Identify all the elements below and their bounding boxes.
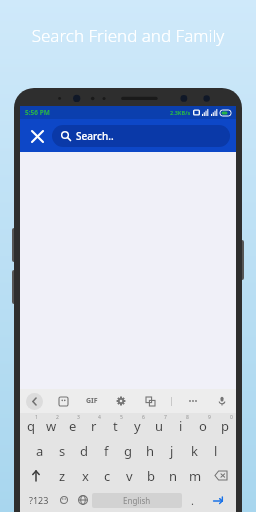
staticText: p (221, 417, 229, 435)
staticText: 2 (56, 414, 59, 421)
button[interactable]: Stickers (55, 393, 71, 409)
button[interactable]: c (96, 463, 118, 488)
staticText: u (155, 417, 164, 435)
staticText: z (59, 467, 66, 485)
button[interactable]: Translate (142, 393, 158, 409)
staticText: o (199, 417, 207, 435)
button[interactable]: a (29, 438, 51, 463)
staticText: a (36, 442, 44, 460)
button[interactable]: d (73, 438, 95, 463)
button[interactable]: q (20, 413, 41, 438)
staticText: r (91, 417, 97, 435)
button[interactable]: s (51, 438, 73, 463)
staticText: 9 (208, 414, 211, 421)
staticText: h (146, 442, 155, 460)
button[interactable]: . (182, 488, 203, 512)
button[interactable]: m (184, 463, 206, 488)
button[interactable]: More (185, 393, 201, 409)
button[interactable]: Settings (113, 393, 129, 409)
staticText: s (59, 442, 66, 460)
staticText: t (113, 417, 118, 435)
button[interactable]: w (41, 413, 62, 438)
staticText: 7 (164, 414, 167, 421)
staticText: 3 (77, 414, 80, 421)
button[interactable]: e (62, 413, 83, 438)
staticText: l (214, 442, 218, 460)
staticText: Search Friend and Family (0, 24, 256, 47)
button[interactable]: b (140, 463, 162, 488)
staticText: ?123 (29, 494, 49, 506)
staticText: 2.3KB/s (170, 109, 191, 116)
button[interactable]: Shift (21, 463, 51, 488)
button[interactable]: u (148, 413, 170, 438)
staticText: Search.. (76, 129, 114, 143)
staticText: b (147, 467, 155, 485)
staticText: q (27, 417, 35, 435)
staticText: v (126, 467, 133, 485)
staticText: 8 (186, 414, 189, 421)
button[interactable]: r (83, 413, 104, 438)
staticText: 0 (230, 414, 233, 421)
button[interactable]: j (161, 438, 183, 463)
staticText: . (191, 493, 194, 508)
button[interactable]: Enter (203, 488, 233, 512)
staticText: English (123, 495, 151, 506)
staticText: 6 (142, 414, 145, 421)
staticText: j (170, 442, 174, 460)
button[interactable]: l (205, 438, 227, 463)
staticText: x (82, 467, 89, 485)
button[interactable]: Backspace (206, 463, 235, 488)
button[interactable]: Search.. (52, 125, 230, 147)
button[interactable]: p (214, 413, 236, 438)
button[interactable]: y (126, 413, 148, 438)
button[interactable]: Change language (73, 488, 92, 512)
button[interactable]: z (51, 463, 74, 488)
button[interactable]: ?123 (23, 488, 54, 512)
staticText: f (104, 442, 109, 460)
staticText: c (104, 467, 111, 485)
staticText: n (169, 467, 178, 485)
button[interactable]: Emoji (54, 488, 73, 512)
staticText: e (69, 417, 77, 435)
button[interactable]: k (183, 438, 205, 463)
button[interactable]: v (118, 463, 140, 488)
button[interactable]: o (192, 413, 214, 438)
staticText: k (191, 442, 198, 460)
staticText: w (46, 417, 57, 435)
staticText: 5 (120, 414, 123, 421)
staticText: m (189, 467, 202, 485)
staticText: GIF (86, 396, 98, 406)
staticText: 5:56 PM (25, 108, 50, 117)
button[interactable]: f (95, 438, 117, 463)
button[interactable]: h (139, 438, 161, 463)
staticText: y (134, 417, 141, 435)
button[interactable]: x (74, 463, 96, 488)
staticText: d (80, 442, 88, 460)
staticText: 1 (35, 414, 38, 421)
button[interactable]: Back (26, 393, 43, 410)
button[interactable]: Close (26, 125, 48, 147)
button[interactable]: Voice input (214, 393, 230, 409)
staticText: i (179, 417, 183, 435)
staticText: g (124, 442, 132, 460)
staticText: 4 (98, 414, 101, 421)
button[interactable]: i (170, 413, 192, 438)
button[interactable]: GIF (84, 394, 100, 408)
button[interactable]: n (162, 463, 184, 488)
button[interactable]: g (117, 438, 139, 463)
button[interactable]: English (92, 493, 182, 508)
button[interactable]: t (104, 413, 126, 438)
